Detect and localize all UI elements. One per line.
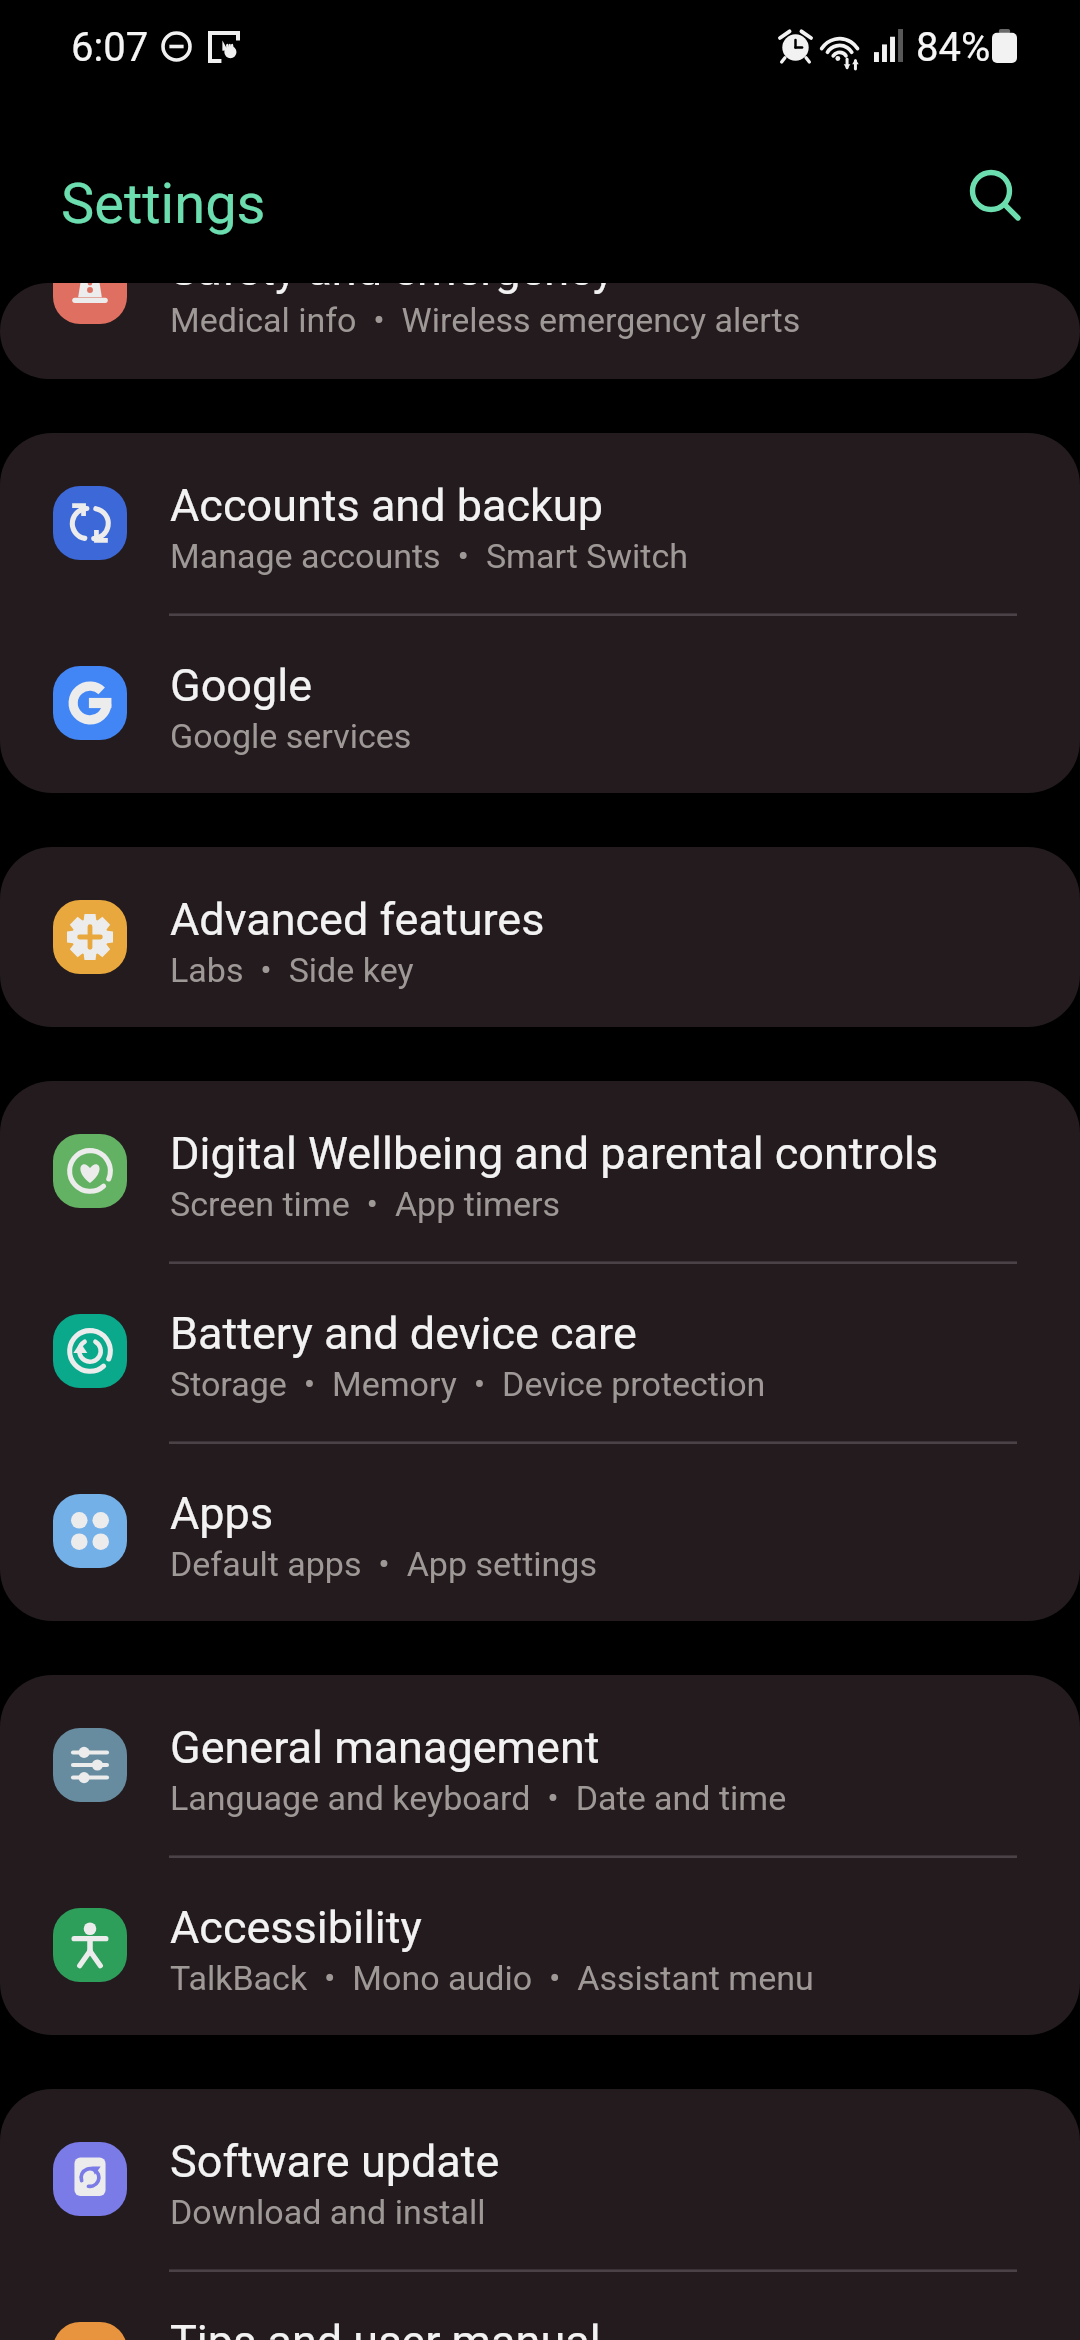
- button[interactable]: Accessibility: [0, 1855, 1080, 2035]
- button[interactable]: Apps: [0, 1441, 1080, 1621]
- staticText: 6:07: [71, 24, 149, 71]
- staticText: Advanced features: [170, 893, 545, 946]
- button[interactable]: Software update: [0, 2089, 1080, 2269]
- button[interactable]: Tips and user manual: [0, 2269, 1080, 2340]
- staticText: Storage • Memory • Device protection: [170, 1364, 766, 1404]
- button[interactable]: Safety and emergency: [0, 283, 1080, 379]
- button[interactable]: Google: [0, 613, 1080, 793]
- staticText: Labs • Side key: [170, 950, 414, 990]
- staticText: Battery and device care: [170, 1307, 637, 1360]
- staticText: Accounts and backup: [170, 479, 603, 532]
- button[interactable]: Safety and emergency: [0, 283, 1080, 377]
- staticText: Download and install: [170, 2192, 486, 2232]
- staticText: General management: [170, 1721, 600, 1774]
- staticText: Manage accounts • Smart Switch: [170, 536, 688, 576]
- staticText: Google services: [170, 716, 412, 756]
- staticText: Digital Wellbeing and parental controls: [170, 1127, 939, 1180]
- button[interactable]: Battery and device care: [0, 1261, 1080, 1441]
- staticText: Default apps • App settings: [170, 1544, 597, 1584]
- button[interactable]: General management: [0, 1675, 1080, 1855]
- staticText: Tips and user manual: [170, 2315, 601, 2340]
- button[interactable]: Search: [936, 140, 1046, 250]
- staticText: 84%: [916, 24, 991, 71]
- staticText: Google: [170, 659, 313, 712]
- button[interactable]: Digital Wellbeing and parental controls: [0, 1081, 1080, 1261]
- button[interactable]: Accounts and backup: [0, 433, 1080, 613]
- staticText: Screen time • App timers: [170, 1184, 561, 1224]
- staticText: TalkBack • Mono audio • Assistant menu: [170, 1958, 814, 1998]
- staticText: Language and keyboard • Date and time: [170, 1778, 787, 1818]
- staticText: Software update: [170, 2135, 500, 2188]
- staticText: Apps: [170, 1487, 274, 1540]
- staticText: Medical info • Wireless emergency alerts: [170, 300, 801, 340]
- staticText: Safety and emergency: [170, 283, 615, 296]
- button[interactable]: Advanced features: [0, 847, 1080, 1027]
- staticText: Settings: [61, 171, 266, 237]
- staticText: Accessibility: [170, 1901, 422, 1954]
